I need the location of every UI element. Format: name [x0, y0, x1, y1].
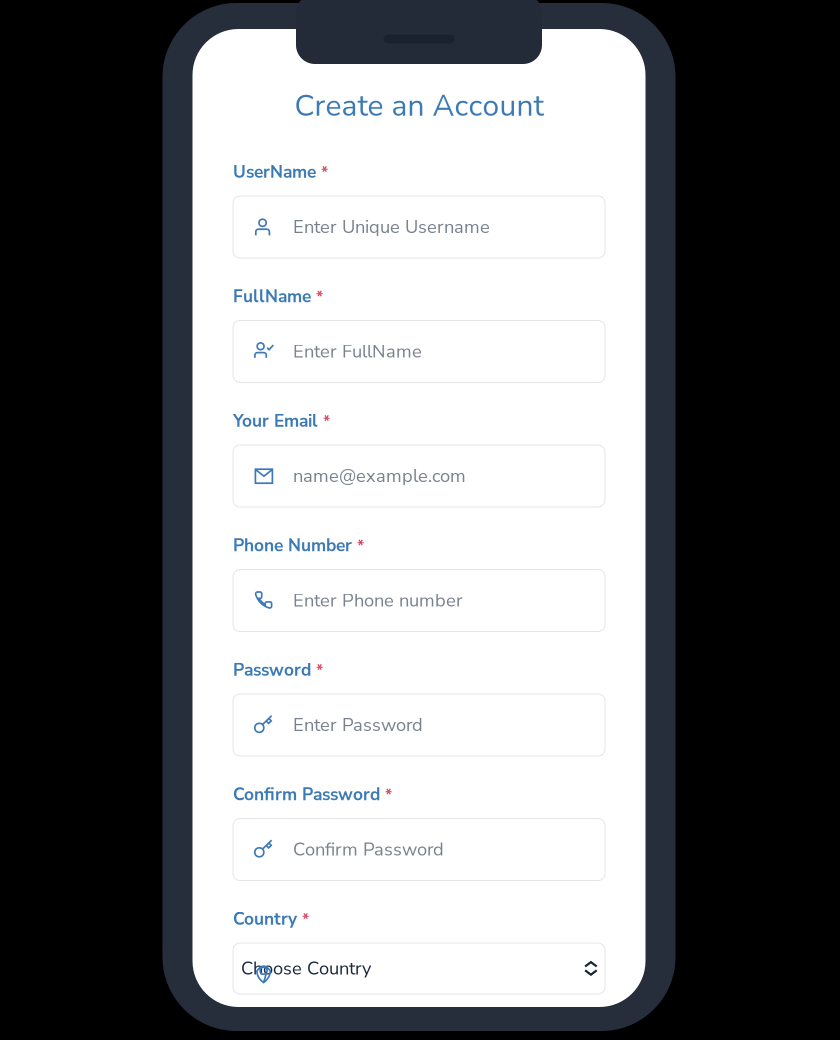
staticText: Enter Unique Username [293, 214, 490, 239]
staticText: Phone Number [233, 534, 352, 557]
staticText: Choose Country [241, 956, 371, 981]
staticText: Password [233, 658, 311, 682]
staticText: * [357, 535, 364, 557]
staticText: Enter Phone number [293, 588, 463, 613]
staticText: FullName [233, 285, 311, 308]
staticText: * [316, 286, 323, 308]
staticText: Country [233, 907, 297, 931]
staticText: Confirm Password [293, 837, 444, 862]
staticText: Enter Password [293, 712, 423, 737]
button[interactable]: Enter Phone number [233, 569, 605, 631]
staticText: Enter FullName [293, 339, 422, 364]
button[interactable]: Choose Country [233, 943, 605, 994]
button[interactable]: Enter Password [233, 694, 605, 756]
staticText: Your Email [233, 409, 318, 433]
staticText: UserName [233, 160, 316, 184]
button[interactable]: Enter FullName [233, 320, 605, 382]
button[interactable]: Enter Unique Username [233, 196, 605, 258]
button[interactable]: name@example.com [233, 445, 605, 507]
staticText: Create an Account [294, 86, 543, 126]
staticText: * [323, 410, 330, 432]
button[interactable]: Confirm Password [233, 818, 605, 880]
staticText: * [321, 161, 328, 183]
staticText: name@example.com [293, 463, 466, 488]
staticText: * [385, 784, 392, 806]
staticText: * [302, 908, 309, 930]
staticText: * [316, 659, 323, 681]
staticText: Confirm Password [233, 783, 380, 806]
